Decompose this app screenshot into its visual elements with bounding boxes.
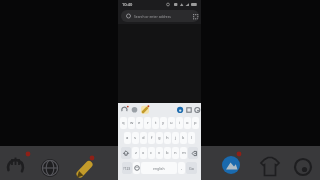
staticText: z bbox=[135, 150, 137, 156]
staticText: g bbox=[158, 135, 161, 141]
staticText: w bbox=[130, 120, 134, 126]
staticText: k bbox=[182, 135, 185, 141]
staticText: english bbox=[153, 166, 165, 171]
staticText: q bbox=[122, 120, 125, 126]
staticText: n bbox=[174, 150, 177, 156]
staticText: v bbox=[158, 150, 161, 156]
staticText: Search or enter address bbox=[134, 14, 171, 18]
staticText: t bbox=[155, 120, 157, 126]
staticText: u bbox=[170, 120, 173, 126]
staticText: f bbox=[151, 135, 153, 141]
staticText: h bbox=[166, 135, 169, 141]
staticText: y bbox=[162, 120, 165, 126]
staticText: s bbox=[134, 135, 137, 141]
staticText: a bbox=[126, 135, 129, 141]
staticText: r bbox=[147, 120, 149, 126]
staticText: ?123 bbox=[123, 166, 131, 171]
staticText: . bbox=[181, 165, 183, 172]
staticText: e bbox=[138, 120, 141, 126]
staticText: Go bbox=[189, 166, 195, 171]
staticText: m bbox=[182, 150, 186, 156]
staticText: i bbox=[179, 120, 181, 126]
staticText: l bbox=[191, 135, 193, 141]
staticText: p bbox=[194, 120, 197, 126]
staticText: c bbox=[150, 150, 153, 156]
staticText: b bbox=[166, 150, 169, 156]
staticText: d bbox=[142, 135, 145, 141]
staticText: o bbox=[186, 120, 189, 126]
staticText: x bbox=[142, 150, 145, 156]
staticText: j bbox=[175, 135, 177, 141]
staticText: 10:40 bbox=[122, 2, 133, 7]
